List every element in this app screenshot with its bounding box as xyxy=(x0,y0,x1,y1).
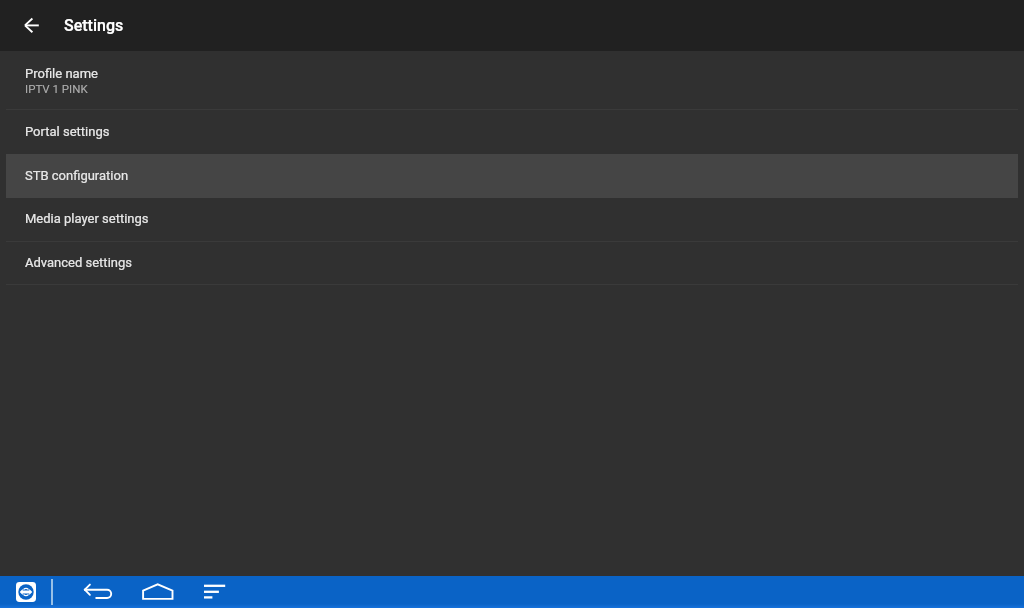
staticText: Settings xyxy=(64,16,124,35)
staticText: Profile name xyxy=(25,66,98,81)
staticText: Portal settings xyxy=(25,124,110,139)
button[interactable]: Back xyxy=(82,578,114,606)
button[interactable]: Profile name xyxy=(0,51,1024,109)
button[interactable]: Home xyxy=(141,578,175,606)
button[interactable]: Media player settings xyxy=(0,198,1024,241)
staticText: Advanced settings xyxy=(25,255,132,270)
button[interactable]: STB configuration xyxy=(6,154,1018,198)
button[interactable]: Recent apps xyxy=(202,578,230,606)
staticText: STB configuration xyxy=(25,168,129,183)
button[interactable]: Advanced settings xyxy=(0,242,1024,284)
staticText: Media player settings xyxy=(25,211,149,226)
button[interactable]: Navigate up xyxy=(7,3,52,48)
button[interactable]: Portal settings xyxy=(0,110,1024,154)
staticText: IPTV 1 PINK xyxy=(25,82,88,95)
button[interactable]: Remote control session xyxy=(16,582,36,602)
